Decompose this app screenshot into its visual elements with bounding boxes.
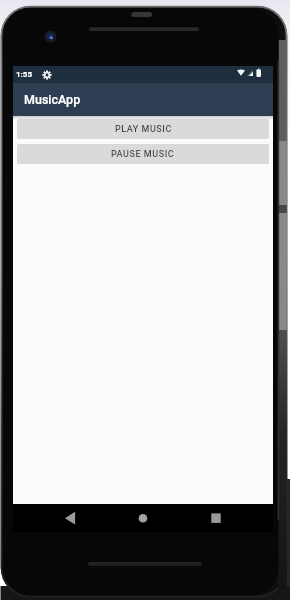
staticText: MusicApp: [24, 92, 81, 107]
button[interactable]: [132, 507, 154, 529]
button[interactable]: [59, 507, 81, 529]
button[interactable]: [205, 507, 227, 529]
button[interactable]: PLAY MUSIC: [17, 119, 269, 139]
button[interactable]: PAUSE MUSIC: [17, 144, 269, 164]
staticText: PAUSE MUSIC: [111, 149, 175, 160]
staticText: PLAY MUSIC: [115, 124, 172, 135]
staticText: 1:55: [16, 70, 33, 79]
